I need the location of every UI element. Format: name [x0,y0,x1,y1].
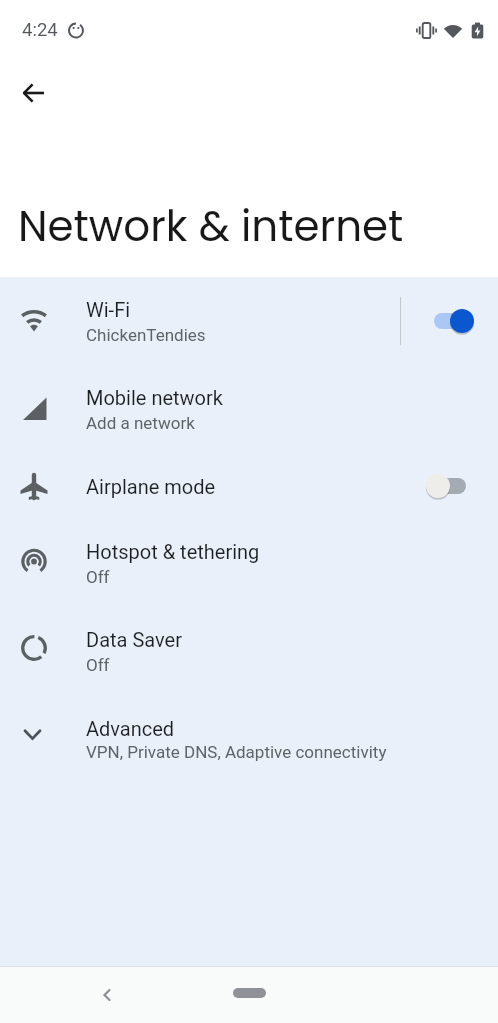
staticText: Data Saver [86,628,182,651]
button[interactable]: Advanced [0,695,498,783]
button[interactable]: Wi-Fi [0,277,498,365]
staticText: Wi-Fi [86,298,131,321]
button[interactable] [10,69,58,117]
button[interactable]: Data Saver [0,607,498,695]
button[interactable] [90,978,124,1012]
button[interactable]: Hotspot & tethering [0,519,498,607]
staticText: Add a network [86,413,195,433]
staticText: Advanced [86,717,175,740]
staticText: Airplane mode [86,475,216,498]
staticText: Hotspot & tethering [86,540,260,563]
staticText: 4:24 [22,19,58,41]
button[interactable]: Airplane mode [0,453,498,519]
button[interactable] [233,988,266,998]
staticText: Off [86,567,110,587]
staticText: Mobile network [86,386,223,409]
staticText: VPN, Private DNS, Adaptive connectivity [86,742,387,762]
staticText: Network & internet [18,197,404,256]
staticText: Off [86,655,110,675]
staticText: ChickenTendies [86,325,206,345]
button[interactable] [401,277,498,365]
button[interactable]: Mobile network [0,365,498,453]
